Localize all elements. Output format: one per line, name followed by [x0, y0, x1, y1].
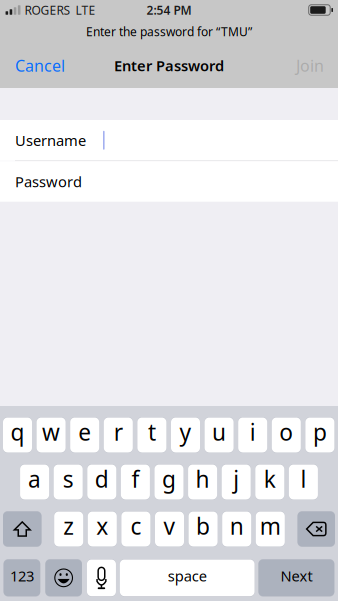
staticText: h — [196, 464, 210, 494]
button[interactable]: g — [154, 464, 183, 500]
button[interactable]: i — [238, 417, 267, 453]
staticText: o — [279, 417, 293, 447]
button[interactable]: q — [3, 417, 32, 453]
button[interactable]: Username — [0, 120, 338, 160]
staticText: ROGERS — [24, 2, 70, 18]
staticText: u — [212, 417, 226, 447]
staticText: q — [10, 417, 24, 447]
button[interactable]: p — [305, 417, 334, 453]
staticText: n — [230, 511, 244, 541]
button[interactable]: o — [272, 417, 301, 453]
button[interactable]: x — [88, 511, 117, 547]
staticText: b — [196, 511, 210, 541]
staticText: a — [28, 464, 41, 494]
button[interactable]: z — [54, 511, 83, 547]
staticText: c — [130, 511, 141, 541]
staticText: i — [250, 417, 256, 447]
staticText: Next — [280, 566, 312, 586]
button[interactable]: n — [222, 511, 251, 547]
staticText: p — [313, 417, 327, 447]
button[interactable]: Password — [0, 161, 338, 202]
button[interactable]: f — [121, 464, 150, 500]
button[interactable]: h — [188, 464, 217, 500]
button[interactable]: e — [70, 417, 99, 453]
button[interactable]: space — [120, 559, 255, 597]
staticText: t — [148, 417, 156, 447]
button[interactable]: v — [155, 511, 184, 547]
button[interactable]: y — [171, 417, 200, 453]
button[interactable]: u — [205, 417, 234, 453]
staticText: l — [300, 464, 306, 494]
button[interactable]: Next — [258, 559, 334, 597]
button[interactable]: b — [189, 511, 218, 547]
button[interactable]: k — [255, 464, 284, 500]
staticText: m — [260, 511, 281, 541]
staticText: k — [264, 464, 276, 494]
staticText: r — [114, 417, 123, 447]
staticText: 2:54 PM — [146, 2, 191, 18]
staticText: w — [42, 417, 60, 447]
staticText: Username — [15, 130, 86, 150]
button[interactable]: Delete — [297, 511, 335, 547]
staticText: e — [78, 417, 91, 447]
staticText: Password — [15, 172, 82, 191]
staticText: Cancel — [15, 55, 65, 76]
button[interactable]: a — [20, 464, 49, 500]
staticText: s — [63, 464, 74, 494]
staticText: f — [131, 464, 139, 494]
staticText: d — [95, 464, 109, 494]
button[interactable]: c — [121, 511, 150, 547]
staticText: Enter Password — [114, 56, 224, 75]
button[interactable]: j — [222, 464, 251, 500]
button[interactable]: 123 — [3, 559, 40, 597]
button[interactable]: Shift — [3, 511, 41, 547]
button[interactable]: t — [137, 417, 166, 453]
button[interactable]: s — [54, 464, 83, 500]
staticText: v — [163, 511, 175, 541]
staticText: LTE — [75, 2, 95, 18]
staticText: 123 — [10, 566, 34, 586]
button[interactable]: m — [256, 511, 285, 547]
button[interactable]: Cancel — [0, 43, 85, 88]
staticText: x — [96, 511, 108, 541]
staticText: space — [168, 566, 207, 586]
button[interactable]: r — [104, 417, 133, 453]
staticText: Join — [296, 55, 324, 76]
button[interactable]: Emoji — [45, 559, 82, 597]
button[interactable]: l — [289, 464, 318, 500]
staticText: z — [63, 511, 74, 541]
staticText: y — [179, 417, 191, 447]
staticText: j — [233, 464, 239, 494]
button[interactable]: Dictate — [87, 559, 116, 597]
button[interactable]: Join — [268, 43, 338, 88]
staticText: Enter the password for “TMU” — [86, 23, 252, 39]
staticText: g — [162, 464, 176, 494]
button[interactable]: w — [37, 417, 66, 453]
button[interactable]: d — [87, 464, 116, 500]
